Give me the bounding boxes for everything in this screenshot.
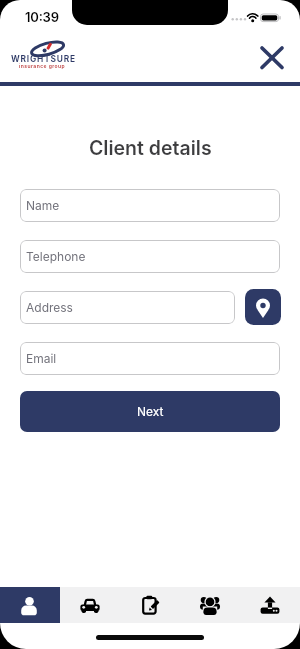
button[interactable]: WRIGHTSURE	[0, 26, 300, 87]
button[interactable]: Telephone	[20, 240, 280, 273]
staticText: Name	[26, 198, 60, 213]
button[interactable]	[240, 587, 300, 623]
button[interactable]	[60, 587, 120, 623]
button[interactable]	[180, 587, 240, 623]
staticText: Address	[26, 300, 73, 315]
button[interactable]	[120, 587, 180, 623]
button[interactable]: Name	[20, 189, 280, 222]
button[interactable]: Email	[20, 342, 280, 375]
button[interactable]: Next	[20, 391, 280, 432]
staticText: Email	[26, 351, 57, 366]
staticText: WRIGHTSURE	[11, 54, 76, 64]
button[interactable]	[254, 40, 290, 76]
staticText: Next	[137, 404, 164, 419]
staticText: 10:39	[25, 9, 59, 25]
button[interactable]	[245, 289, 281, 325]
button[interactable]: Address	[20, 291, 235, 324]
staticText: Telephone	[26, 249, 86, 264]
staticText: Client details	[89, 136, 212, 160]
button[interactable]	[0, 587, 60, 623]
staticText: insurance group	[19, 63, 66, 69]
